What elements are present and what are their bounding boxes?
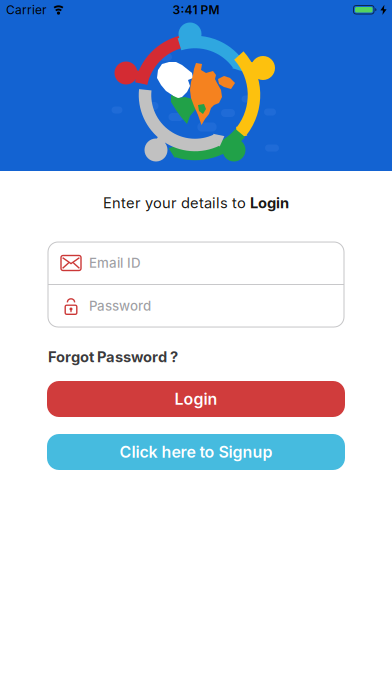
staticText: Login — [174, 390, 217, 408]
button[interactable]: Password — [48, 285, 344, 327]
button[interactable]: Forgot Password ? — [0, 349, 392, 365]
staticText: Password — [89, 298, 151, 314]
staticText: Email ID — [89, 255, 141, 271]
staticText: Carrier — [6, 3, 47, 17]
staticText: Enter your details to Login — [103, 194, 289, 212]
button[interactable]: Login — [0, 381, 392, 417]
button[interactable]: Click here to Signup — [0, 434, 392, 470]
staticText: 3:41 PM — [172, 3, 219, 17]
button[interactable]: Email ID — [48, 242, 344, 284]
staticText: Forgot Password ? — [48, 348, 178, 366]
staticText: Click here to Signup — [119, 443, 272, 461]
